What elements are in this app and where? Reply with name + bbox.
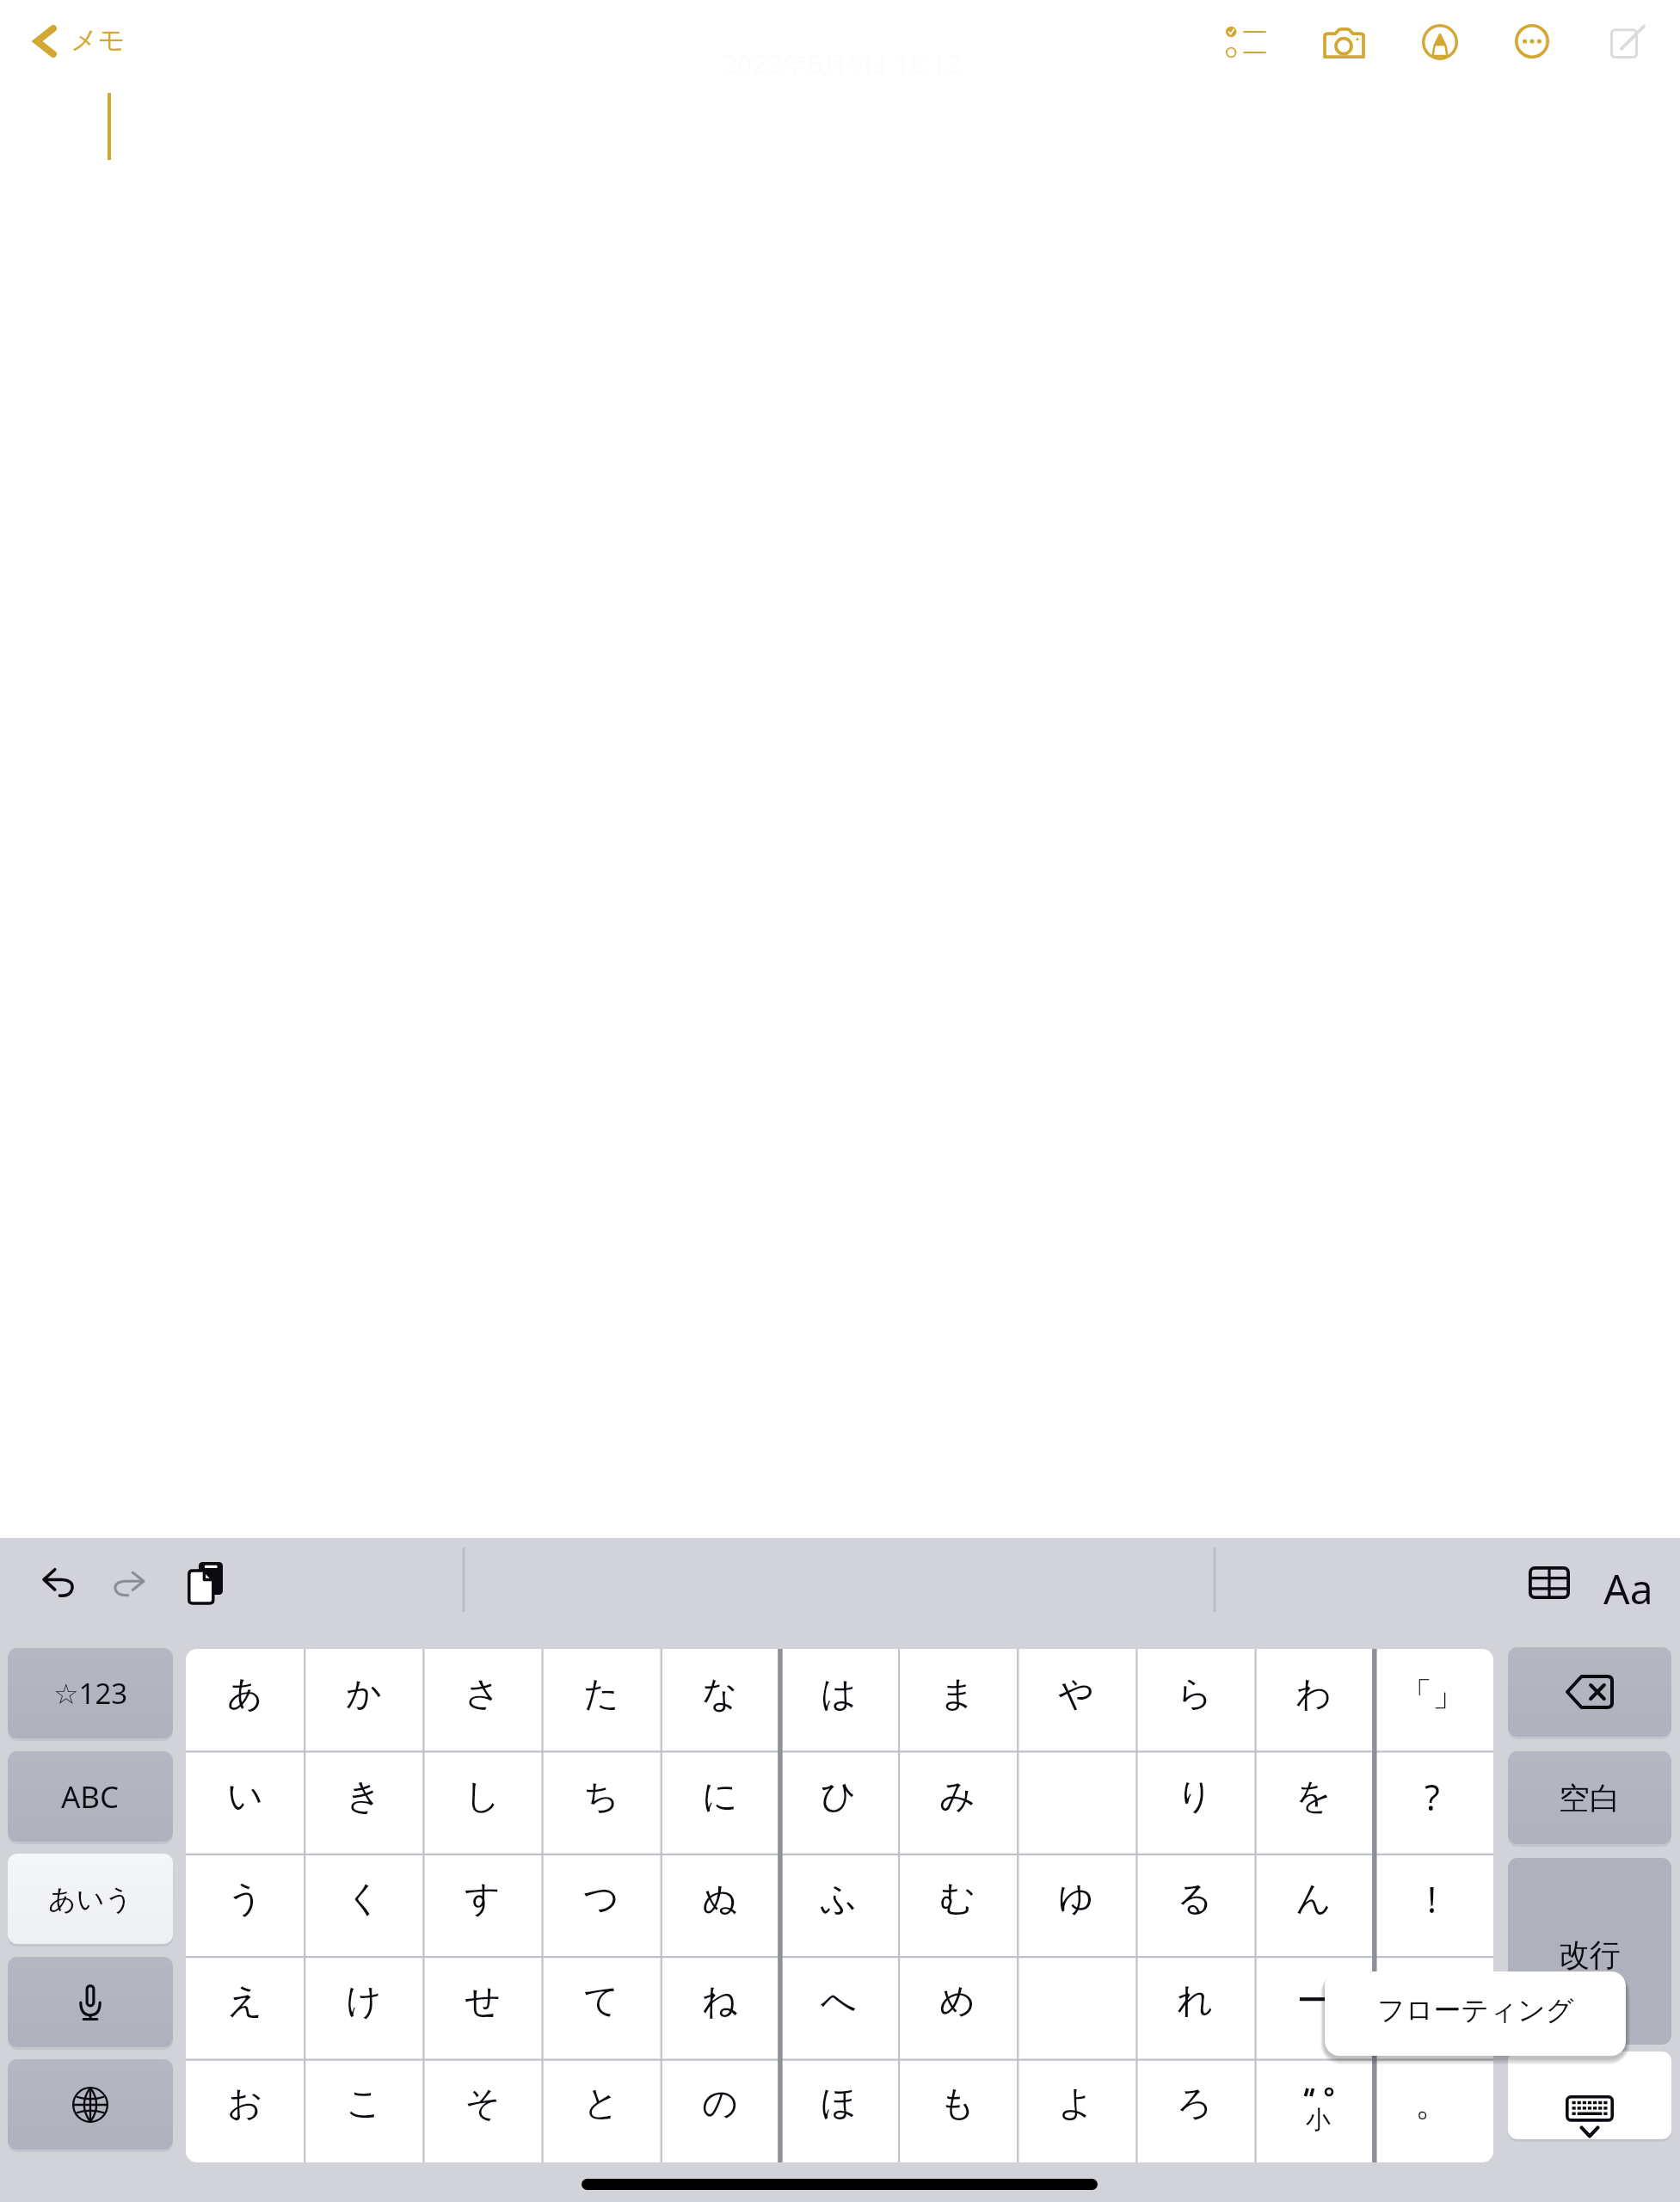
button[interactable]: Markup bbox=[1400, 0, 1480, 82]
button[interactable] bbox=[1017, 1751, 1135, 1854]
button[interactable]: Text format bbox=[1585, 1548, 1671, 1627]
staticText: も bbox=[939, 2082, 975, 2126]
button[interactable]: Camera bbox=[1300, 0, 1388, 82]
button[interactable]: さ bbox=[423, 1649, 542, 1751]
button[interactable]: た bbox=[542, 1649, 661, 1751]
button[interactable]: 「」 bbox=[1373, 1649, 1492, 1751]
button[interactable]: あ bbox=[186, 1649, 305, 1751]
button[interactable]: フローティング bbox=[1325, 1971, 1626, 2056]
button[interactable]: に bbox=[661, 1751, 779, 1854]
button[interactable]: ? bbox=[1373, 1751, 1492, 1854]
button[interactable]: ち bbox=[542, 1751, 661, 1854]
button[interactable]: Redo bbox=[90, 1538, 169, 1649]
button[interactable]: や bbox=[1017, 1649, 1135, 1751]
staticText: て bbox=[583, 1979, 619, 2024]
button[interactable]: な bbox=[661, 1649, 779, 1751]
staticText: め bbox=[939, 1979, 975, 2024]
button[interactable]: み bbox=[898, 1751, 1017, 1854]
button[interactable]: ら bbox=[1135, 1649, 1254, 1751]
button[interactable]: ☆123 bbox=[8, 1648, 173, 1738]
staticText: そ bbox=[465, 2082, 501, 2126]
button[interactable]: 、 bbox=[1373, 1956, 1492, 2058]
button[interactable]: わ bbox=[1254, 1649, 1373, 1751]
staticText: か bbox=[346, 1672, 382, 1717]
staticText: ふ bbox=[821, 1877, 857, 1922]
staticText: せ bbox=[465, 1979, 501, 2024]
staticText: ? bbox=[1425, 1773, 1440, 1821]
button[interactable]: New note bbox=[1588, 0, 1667, 82]
button[interactable]: へ bbox=[779, 1956, 898, 2058]
button[interactable]: は bbox=[779, 1649, 898, 1751]
button[interactable]: と bbox=[542, 2058, 661, 2161]
staticText: き bbox=[346, 1775, 382, 1819]
button[interactable]: ね bbox=[661, 1956, 779, 2058]
button[interactable]: こ bbox=[305, 2058, 423, 2161]
staticText: Aa bbox=[1603, 1560, 1653, 1616]
button[interactable]: Undo bbox=[18, 1538, 97, 1649]
button[interactable]: Hide keyboard bbox=[1508, 2051, 1671, 2139]
button[interactable]: し bbox=[423, 1751, 542, 1854]
button[interactable]: ろ bbox=[1135, 2058, 1254, 2161]
button[interactable]: ぬ bbox=[661, 1854, 779, 1956]
button[interactable]: 。 bbox=[1373, 2058, 1492, 2161]
button[interactable]: ふ bbox=[779, 1854, 898, 1956]
staticText: ら bbox=[1177, 1672, 1213, 1717]
button[interactable]: も bbox=[898, 2058, 1017, 2161]
staticText: 改行 bbox=[1559, 1935, 1621, 1974]
button[interactable]: ひ bbox=[779, 1751, 898, 1854]
button[interactable]: ゆ bbox=[1017, 1854, 1135, 1956]
button[interactable]: ん bbox=[1254, 1854, 1373, 1956]
staticText: え bbox=[227, 1979, 263, 2024]
staticText: あ bbox=[227, 1672, 263, 1717]
button[interactable]: つ bbox=[542, 1854, 661, 1956]
button[interactable]: Dictation bbox=[8, 1957, 173, 2047]
button[interactable]: い bbox=[186, 1751, 305, 1854]
button[interactable]: け bbox=[305, 1956, 423, 2058]
staticText: ひ bbox=[821, 1775, 857, 1819]
button[interactable]: あいう bbox=[8, 1854, 173, 1944]
button[interactable]: り bbox=[1135, 1751, 1254, 1854]
button[interactable]: れ bbox=[1135, 1956, 1254, 2058]
button[interactable]: ー bbox=[1254, 1956, 1373, 2058]
button[interactable]: む bbox=[898, 1854, 1017, 1956]
button[interactable]: る bbox=[1135, 1854, 1254, 1956]
button[interactable]: う bbox=[186, 1854, 305, 1956]
staticText: あいう bbox=[48, 1882, 133, 1916]
button[interactable]: め bbox=[898, 1956, 1017, 2058]
staticText: る bbox=[1177, 1877, 1213, 1922]
staticText: ☆123 bbox=[53, 1674, 128, 1713]
button[interactable]: え bbox=[186, 1956, 305, 2058]
button[interactable]: を bbox=[1254, 1751, 1373, 1854]
staticText: む bbox=[939, 1877, 975, 1922]
button[interactable]: 空白 bbox=[1508, 1751, 1671, 1844]
button[interactable]: き bbox=[305, 1751, 423, 1854]
staticText: は bbox=[821, 1672, 857, 1717]
button[interactable]: よ bbox=[1017, 2058, 1135, 2161]
button[interactable] bbox=[1017, 1956, 1135, 2058]
button[interactable]: Checklist bbox=[1203, 0, 1288, 82]
button[interactable]: お bbox=[186, 2058, 305, 2161]
button[interactable]: 改行 bbox=[1508, 1858, 1671, 2045]
button[interactable]: メモ bbox=[0, 0, 141, 82]
button[interactable]: ま bbox=[898, 1649, 1017, 1751]
button[interactable]: く bbox=[305, 1854, 423, 1956]
button[interactable]: Change keyboard bbox=[8, 2059, 173, 2150]
button[interactable]: て bbox=[542, 1956, 661, 2058]
button[interactable]: Paste bbox=[166, 1538, 245, 1649]
button[interactable]: そ bbox=[423, 2058, 542, 2161]
button[interactable]: ! bbox=[1373, 1854, 1492, 1956]
button[interactable]: Table bbox=[1506, 1538, 1592, 1649]
button[interactable]: Delete bbox=[1508, 1647, 1671, 1737]
staticText: へ bbox=[821, 1979, 857, 2024]
button[interactable]: 小 bbox=[1254, 2058, 1373, 2161]
button[interactable]: More bbox=[1492, 0, 1572, 82]
button[interactable]: ほ bbox=[779, 2058, 898, 2161]
staticText: に bbox=[702, 1775, 738, 1819]
staticText: ち bbox=[583, 1775, 619, 1819]
button[interactable]: か bbox=[305, 1649, 423, 1751]
button[interactable]: の bbox=[661, 2058, 779, 2161]
button[interactable]: せ bbox=[423, 1956, 542, 2058]
button[interactable]: ABC bbox=[8, 1751, 173, 1842]
button[interactable]: す bbox=[423, 1854, 542, 1956]
